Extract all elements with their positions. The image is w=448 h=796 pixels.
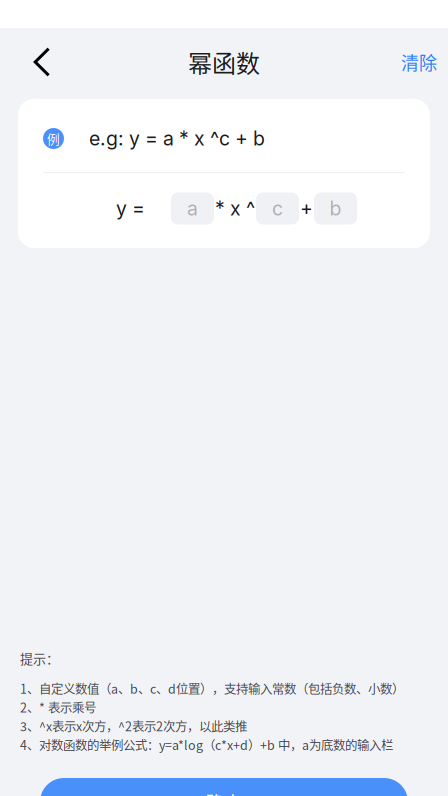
staticText: * x ^ (215, 197, 255, 220)
staticText: y = (116, 197, 145, 220)
button[interactable]: b (314, 192, 357, 224)
staticText: e.g: y = a * x ^c + b (89, 127, 265, 150)
staticText: a (187, 197, 198, 220)
staticText: 幂函数 (188, 45, 260, 79)
button[interactable]: a (171, 192, 214, 224)
staticText: 清除 (401, 49, 437, 75)
staticText: 1、自定义数值（a、b、c、d位置），支持输入常数（包括负数、小数） (20, 679, 404, 697)
staticText: 提示： (20, 648, 59, 667)
staticText: c (272, 197, 283, 220)
staticText: 3、^x表示x次方，^2表示2次方，以此类推 (20, 717, 247, 735)
staticText: b (329, 197, 341, 220)
button[interactable]: c (256, 192, 299, 224)
staticText: + (300, 197, 313, 220)
button[interactable]: 清除 (401, 40, 437, 84)
staticText: 确定 (206, 789, 242, 796)
button[interactable]: 确定 (40, 778, 408, 796)
staticText: 2、* 表示乘号 (20, 698, 96, 716)
button[interactable]: Back (20, 40, 64, 84)
staticText: 4、对数函数的举例公式：y=a*log（c*x+d）+b 中，a为底数的输入栏 (20, 736, 393, 754)
staticText: 例 (47, 129, 60, 148)
